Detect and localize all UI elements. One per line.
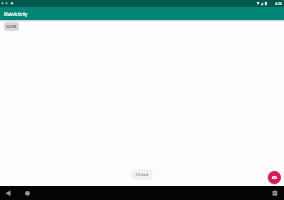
staticText: 4:26 (275, 1, 282, 6)
staticText: CLICK (6, 24, 17, 29)
button[interactable] (4, 190, 13, 197)
button[interactable] (271, 190, 279, 197)
staticText: MainActivity (4, 10, 28, 17)
button[interactable] (24, 190, 31, 197)
button[interactable]: CLICK (4, 22, 19, 31)
button[interactable] (268, 171, 281, 184)
staticText: Clicked (136, 172, 149, 177)
